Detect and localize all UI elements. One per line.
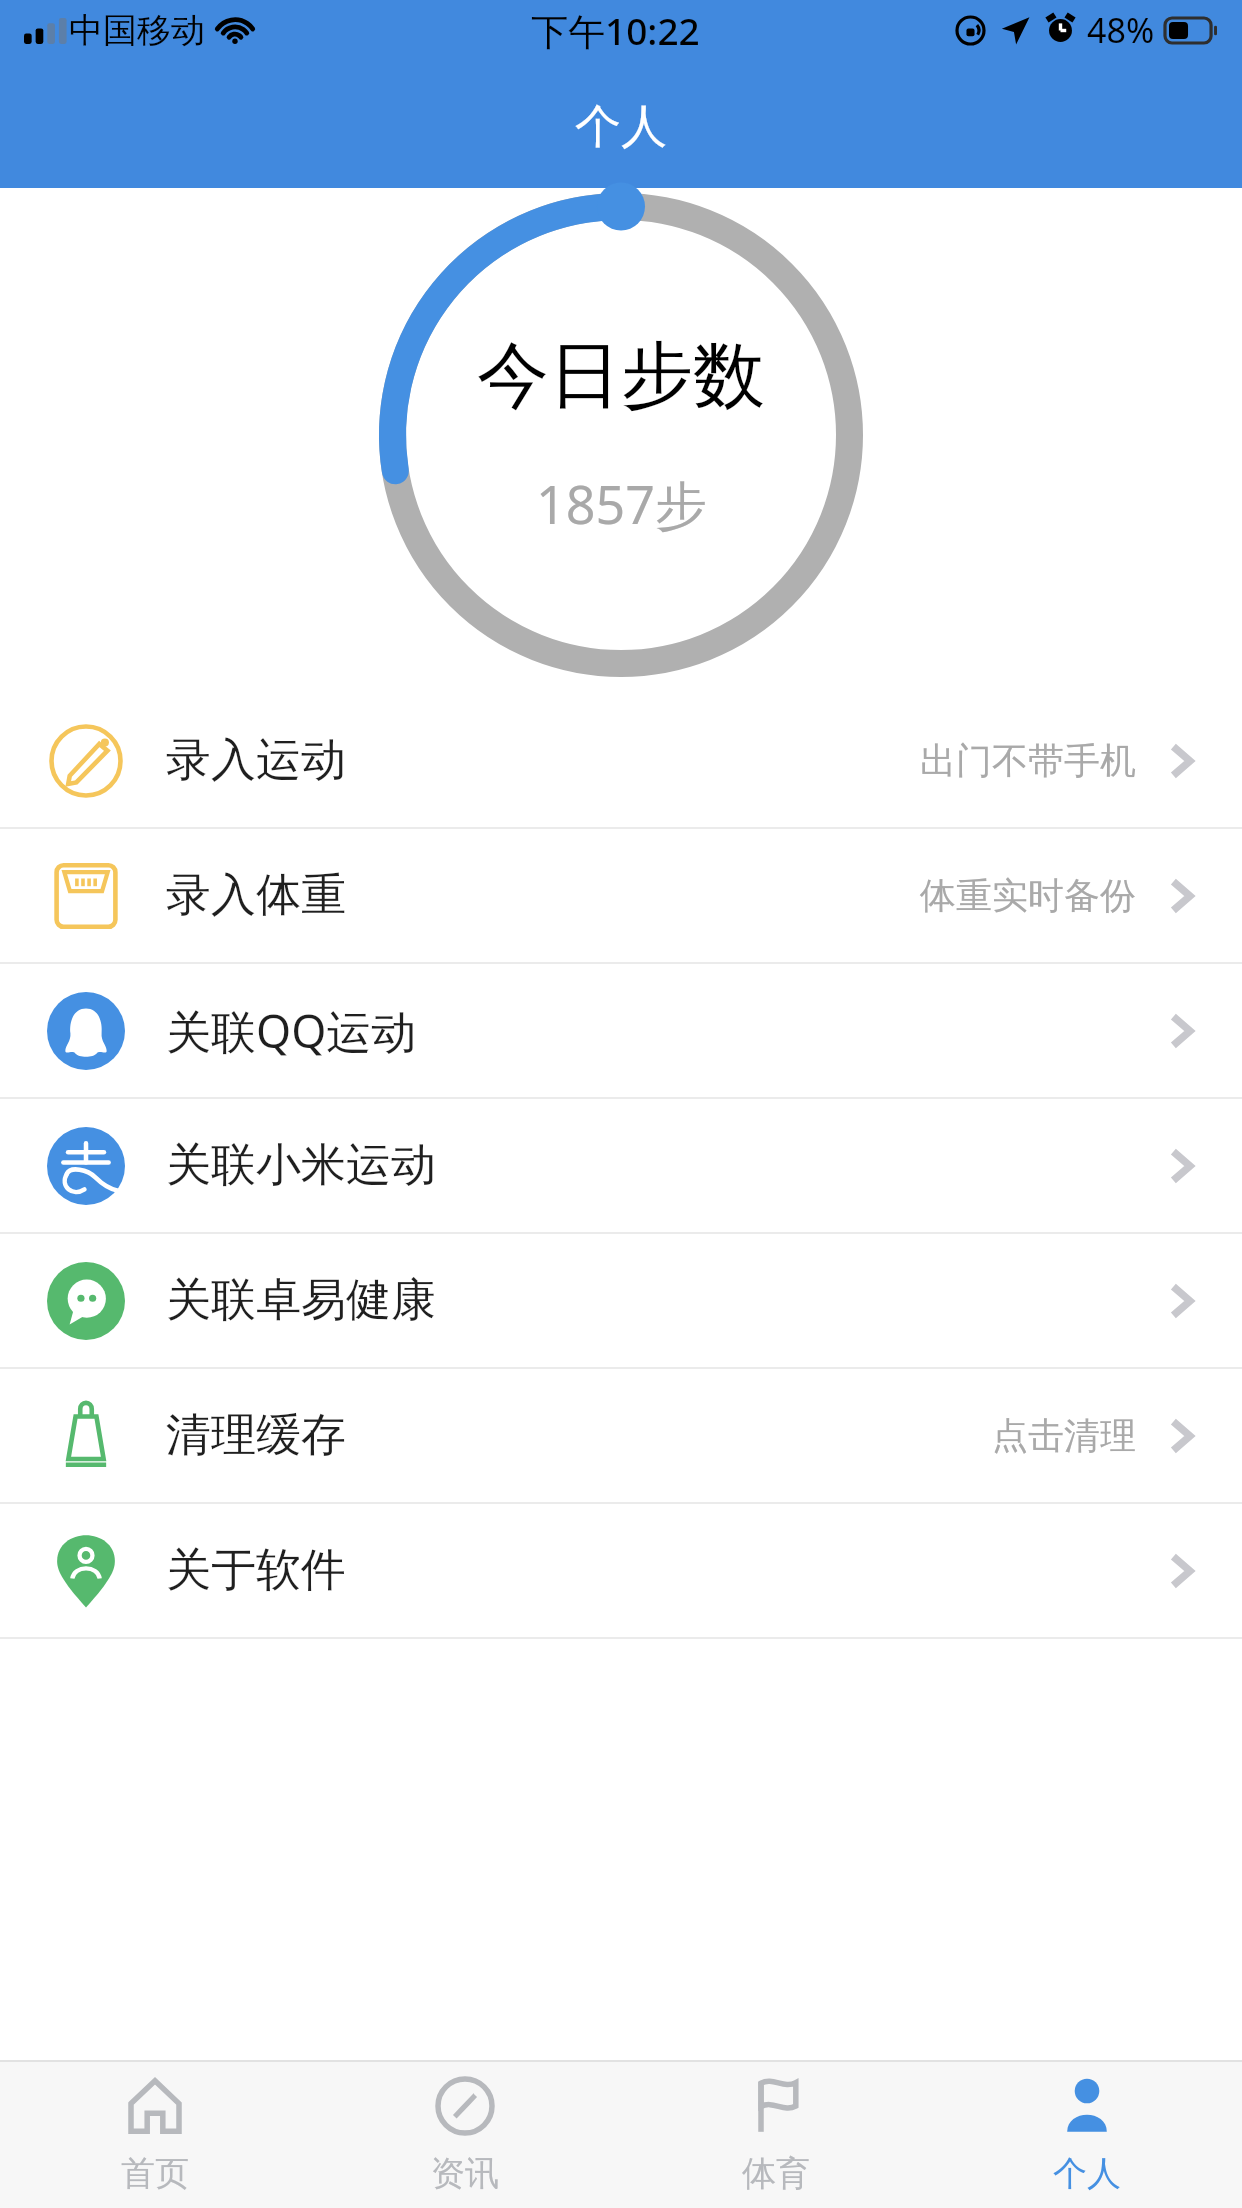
button[interactable]: 清理缓存 bbox=[0, 1369, 1242, 1502]
staticText: 体育 bbox=[742, 2152, 810, 2195]
button[interactable]: 关联小米运动 bbox=[0, 1099, 1242, 1232]
staticText: 出门不带手机 bbox=[920, 738, 1136, 783]
staticText: 下午10:22 bbox=[531, 5, 700, 56]
staticText: 个人 bbox=[1053, 2152, 1121, 2195]
staticText: 48% bbox=[1087, 7, 1155, 53]
staticText: 点击清理 bbox=[992, 1413, 1136, 1458]
button[interactable]: 资讯 bbox=[310, 2062, 620, 2208]
button[interactable]: 关联QQ运动 bbox=[0, 964, 1242, 1097]
button[interactable]: 体育 bbox=[620, 2062, 931, 2208]
staticText: 录入体重 bbox=[166, 867, 346, 924]
staticText: 今日步数 bbox=[477, 331, 765, 422]
button[interactable]: 关联卓易健康 bbox=[0, 1234, 1242, 1367]
staticText: 首页 bbox=[121, 2152, 189, 2195]
staticText: 体重实时备份 bbox=[920, 873, 1136, 918]
staticText: 关联卓易健康 bbox=[166, 1272, 436, 1329]
button[interactable]: 录入运动 bbox=[0, 694, 1242, 827]
button[interactable]: 个人 bbox=[931, 2062, 1242, 2208]
staticText: 资讯 bbox=[431, 2152, 499, 2195]
button[interactable]: 关于软件 bbox=[0, 1504, 1242, 1637]
staticText: 关联QQ运动 bbox=[166, 1000, 417, 1061]
staticText: 中国移动 bbox=[69, 9, 205, 52]
staticText: 录入运动 bbox=[166, 732, 346, 789]
staticText: 关联小米运动 bbox=[166, 1137, 436, 1194]
staticText: 1857步 bbox=[536, 468, 707, 539]
button[interactable]: 首页 bbox=[0, 2062, 310, 2208]
staticText: 关于软件 bbox=[166, 1542, 346, 1599]
staticText: 清理缓存 bbox=[166, 1407, 346, 1464]
staticText: 个人 bbox=[575, 98, 667, 156]
button[interactable]: 录入体重 bbox=[0, 829, 1242, 962]
